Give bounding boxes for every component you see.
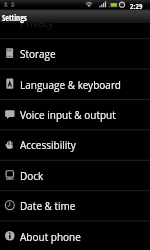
button[interactable]: About phone [0,222,150,250]
button[interactable]: Accessibility [0,130,150,159]
staticText: Settings [2,12,27,23]
button[interactable]: Language & keyboard [0,70,150,99]
button[interactable]: Storage [0,39,150,68]
button[interactable]: Dock [0,161,150,190]
staticText: Accessibility [20,138,76,152]
staticText: Storage [20,47,56,61]
staticText: 2:29 [130,1,143,11]
staticText: About phone [20,230,81,244]
button[interactable]: Date & time [0,191,150,220]
staticText: Voice input & output [20,108,116,122]
staticText: Dock [20,169,44,183]
staticText: Date & time [20,199,76,213]
staticText: Privacy [20,16,54,30]
button[interactable]: Voice input & output [0,100,150,129]
staticText: Language & keyboard [20,78,121,92]
